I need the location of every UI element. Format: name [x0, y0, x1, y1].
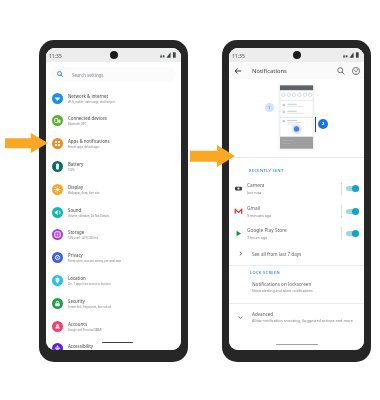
staticText: Show alerting and silent notifications [252, 288, 313, 293]
staticText: Volume, vibration, Do Not Disturb [68, 214, 110, 218]
staticText: Accessibility [68, 343, 94, 349]
button[interactable]: Battery [46, 155, 181, 178]
staticText: On - 7 apps have access to location [68, 282, 111, 286]
button[interactable]: Accessibility [46, 337, 181, 350]
staticText: Notifications on lockscreen [252, 281, 312, 287]
button[interactable]: Display [46, 178, 181, 201]
button[interactable]: Toggle Camera [346, 185, 359, 192]
button[interactable]: Security [46, 292, 181, 315]
staticText: RECENTLY SENT [249, 168, 284, 173]
staticText: Screen lock, fingerprint, face unlock [68, 305, 112, 309]
staticText: Accounts [68, 321, 87, 327]
staticText: Location [68, 275, 86, 281]
button[interactable]: Toggle Gmail [346, 208, 359, 215]
staticText: See all from last 7 days [252, 251, 302, 257]
staticText: Advanced [252, 311, 274, 317]
button[interactable]: Network & internet [46, 87, 181, 110]
staticText: 53% used - 42.93 GB free [68, 236, 99, 240]
button[interactable]: Location [46, 269, 181, 292]
staticText: Permissions, account activity, personal … [68, 259, 122, 263]
staticText: Battery [68, 161, 84, 167]
button[interactable]: Storage [46, 223, 181, 246]
staticText: Display [68, 184, 84, 190]
staticText: 1 [268, 105, 271, 111]
button[interactable]: Camera [229, 177, 364, 200]
staticText: Wallpaper, sleep, font size [68, 191, 100, 195]
staticText: 100% [68, 168, 75, 172]
staticText: Camera [247, 182, 265, 189]
button[interactable]: Accounts [46, 315, 181, 338]
staticText: Network & internet [68, 93, 109, 99]
staticText: Recent apps, default apps [68, 145, 100, 149]
staticText: Gmail [247, 205, 261, 212]
staticText: Sound [68, 207, 82, 213]
staticText: Wi-Fi, mobile, data usage, and hotspot [68, 100, 115, 104]
staticText: 11:35 [232, 53, 245, 60]
staticText: Allow notification snoozing, Suggested a… [252, 318, 353, 323]
button[interactable]: Privacy [46, 246, 181, 269]
staticText: 11:35 [49, 53, 62, 60]
staticText: Connected devices [68, 115, 107, 121]
button[interactable]: Help [351, 66, 361, 76]
button[interactable]: Advanced [229, 306, 364, 328]
button[interactable]: Search [336, 66, 346, 76]
staticText: Bluetooth, NFC [68, 122, 87, 126]
button[interactable]: Apps & notifications [46, 132, 181, 155]
button[interactable]: Google Play Store [229, 222, 364, 245]
staticText: 3 hours ago [247, 235, 268, 240]
staticText: Google and Personal (IMAP) [68, 328, 103, 332]
staticText: Privacy [68, 252, 83, 258]
staticText: Apps & notifications [68, 138, 110, 144]
button[interactable]: See all from last 7 days [229, 243, 364, 264]
button[interactable]: Gmail [229, 200, 364, 223]
staticText: Google Play Store [247, 227, 287, 234]
button[interactable]: Toggle Google Play Store [346, 230, 359, 237]
button[interactable]: Search settings [50, 67, 176, 81]
button[interactable]: Connected devices [46, 109, 181, 132]
button[interactable]: Back [233, 66, 243, 76]
staticText: Notifications [252, 67, 287, 75]
staticText: Security [68, 298, 85, 304]
button[interactable]: Sound [46, 201, 181, 224]
button[interactable]: Notifications on lockscreen [229, 279, 364, 301]
staticText: Just now [247, 190, 262, 195]
staticText: 9 minutes ago [247, 213, 272, 218]
staticText: Search settings [72, 72, 104, 78]
staticText: LOCK SCREEN [250, 270, 280, 275]
staticText: 2 [322, 121, 325, 127]
staticText: Storage [68, 229, 85, 235]
